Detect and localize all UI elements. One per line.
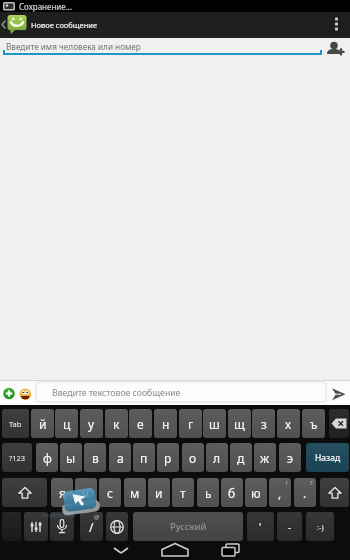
staticText: , xyxy=(278,485,282,501)
button[interactable]: ' xyxy=(247,512,274,541)
staticText: у xyxy=(88,416,95,432)
button[interactable]: ъ xyxy=(302,409,325,438)
button[interactable] xyxy=(24,512,48,541)
staticText: э xyxy=(287,450,293,466)
button[interactable]: к xyxy=(105,409,128,438)
button[interactable]: г xyxy=(179,409,202,438)
staticText: м xyxy=(130,485,140,501)
button[interactable]: я xyxy=(51,478,73,507)
staticText: / xyxy=(89,519,94,535)
staticText: Назад xyxy=(315,452,341,464)
button[interactable]: Tab xyxy=(2,409,29,438)
button[interactable]: э xyxy=(279,443,301,472)
staticText: Русский xyxy=(170,520,207,533)
staticText: ! xyxy=(286,479,288,487)
button[interactable] xyxy=(2,478,47,507)
staticText: :-) xyxy=(317,522,324,532)
staticText: а xyxy=(117,450,124,466)
staticText: ? xyxy=(310,479,313,487)
staticText: к xyxy=(113,416,120,432)
staticText: г xyxy=(188,416,194,432)
button[interactable] xyxy=(50,512,74,541)
button[interactable]: п xyxy=(133,443,155,472)
staticText: Введите текстовое сообщение xyxy=(52,387,181,399)
staticText: е xyxy=(137,416,144,432)
staticText: ф xyxy=(43,450,52,466)
button[interactable]: м xyxy=(124,478,146,507)
staticText: с xyxy=(107,485,113,501)
button[interactable]: а xyxy=(109,443,131,472)
staticText: ы xyxy=(66,450,76,466)
button[interactable]: Русский xyxy=(133,512,243,541)
staticText: ъ xyxy=(310,416,318,432)
button[interactable]: ?123 xyxy=(2,443,32,472)
staticText: н xyxy=(162,416,170,432)
button[interactable]: щ xyxy=(228,409,251,438)
button[interactable]: ж xyxy=(254,443,276,472)
staticText: ?123 xyxy=(9,453,26,463)
staticText: ' xyxy=(259,520,262,534)
button[interactable]: д xyxy=(230,443,252,472)
staticText: Tab xyxy=(9,419,22,429)
staticText: Новое сообщение xyxy=(31,20,98,30)
staticText: mobiltelefon xyxy=(42,511,75,518)
button[interactable] xyxy=(320,478,349,507)
button[interactable]: ц xyxy=(55,409,78,438)
staticText: ч xyxy=(82,485,90,501)
button[interactable]: з xyxy=(252,409,275,438)
staticText: ь xyxy=(205,485,212,501)
staticText: р xyxy=(164,450,172,466)
button[interactable] xyxy=(106,512,128,541)
button[interactable]: и xyxy=(148,478,170,507)
staticText: ц xyxy=(63,416,71,432)
staticText: я xyxy=(59,485,66,501)
button[interactable]: х xyxy=(277,409,300,438)
button[interactable]: ь xyxy=(197,478,219,507)
button[interactable]: л xyxy=(206,443,228,472)
button[interactable]: ы xyxy=(60,443,82,472)
button[interactable]: Назад xyxy=(306,443,349,472)
staticText: щ xyxy=(234,416,245,432)
staticText: в xyxy=(92,450,99,466)
button[interactable] xyxy=(329,409,349,438)
staticText: - xyxy=(288,520,292,534)
staticText: з xyxy=(261,416,267,432)
button[interactable]: б xyxy=(221,478,243,507)
button[interactable]: - xyxy=(277,512,302,541)
button[interactable]: , xyxy=(269,478,291,507)
button[interactable]: с xyxy=(99,478,121,507)
button[interactable]: / xyxy=(80,512,103,541)
button[interactable]: Новое сообщение xyxy=(0,12,350,38)
button[interactable]: н xyxy=(154,409,177,438)
button[interactable]: ю xyxy=(245,478,267,507)
button[interactable]: Введите имя человека или номер xyxy=(0,38,350,60)
button[interactable]: ф xyxy=(36,443,58,472)
button[interactable] xyxy=(2,512,21,541)
staticText: л xyxy=(213,450,221,466)
staticText: б xyxy=(228,485,236,501)
staticText: т xyxy=(180,485,186,501)
staticText: . xyxy=(303,485,307,501)
button[interactable]: ч xyxy=(75,478,97,507)
staticText: ю xyxy=(251,485,261,501)
staticText: ш xyxy=(209,416,220,432)
button[interactable]: р xyxy=(157,443,179,472)
button[interactable]: е xyxy=(129,409,152,438)
staticText: и xyxy=(155,485,163,501)
staticText: Введите имя человека или номер xyxy=(6,41,141,52)
staticText: о xyxy=(189,450,197,466)
staticText: Сохранение... xyxy=(19,1,73,12)
button[interactable]: ш xyxy=(203,409,226,438)
button[interactable]: о xyxy=(182,443,204,472)
button[interactable]: й xyxy=(31,409,54,438)
button[interactable]: т xyxy=(172,478,194,507)
staticText: п xyxy=(140,450,148,466)
staticText: й xyxy=(39,416,47,432)
button[interactable]: у xyxy=(80,409,103,438)
button[interactable]: . xyxy=(294,478,316,507)
staticText: д xyxy=(237,450,245,466)
button[interactable]: в xyxy=(84,443,106,472)
staticText: х xyxy=(285,416,292,432)
button[interactable]: :-) xyxy=(306,512,334,541)
staticText: @ xyxy=(94,513,100,521)
